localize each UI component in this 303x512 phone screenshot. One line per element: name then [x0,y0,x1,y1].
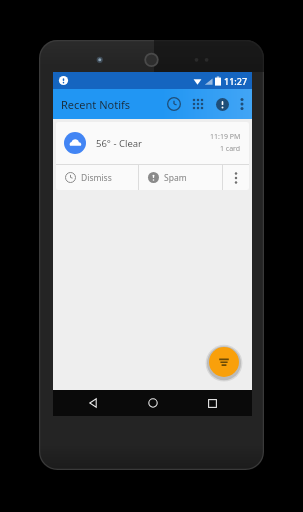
button[interactable]: More actions [223,165,249,190]
button[interactable]: Dismiss [56,165,138,190]
button[interactable]: Spam [139,165,222,190]
staticText: 11:19 PM [210,132,241,142]
staticText: 1 card [220,144,241,154]
button[interactable]: Back [73,390,113,416]
staticText: 56° - Clear [96,137,210,150]
button[interactable]: More options [234,90,250,118]
staticText: 11:27 [224,75,248,87]
button[interactable]: Sort notifications [209,347,239,377]
button[interactable]: Info [210,90,234,118]
staticText: Recent Notifs [61,97,131,112]
button[interactable]: 56° - Clear [56,122,249,164]
staticText: Spam [164,172,187,184]
button[interactable]: Recent apps [192,390,232,416]
button[interactable]: Recent [162,90,186,118]
button[interactable]: All apps [186,90,210,118]
button[interactable]: Home [133,390,173,416]
staticText: Dismiss [81,172,112,184]
